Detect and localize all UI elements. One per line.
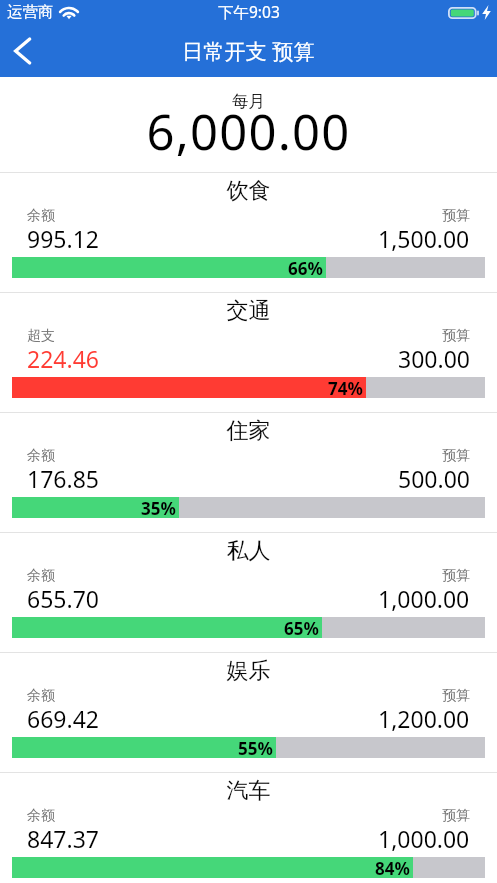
staticText: 66%: [288, 257, 323, 278]
staticText: 余额: [27, 567, 55, 585]
staticText: 预算: [442, 447, 470, 465]
staticText: 余额: [27, 207, 55, 225]
button[interactable]: 私人: [0, 532, 497, 652]
staticText: 500.00: [398, 463, 470, 494]
staticText: 224.46: [27, 343, 99, 374]
button[interactable]: Back: [0, 24, 46, 77]
staticText: 669.42: [27, 703, 99, 734]
staticText: 6,000.00: [0, 98, 497, 165]
staticText: 655.70: [27, 583, 99, 614]
button[interactable]: 交通: [0, 292, 497, 412]
staticText: 74%: [328, 377, 363, 398]
staticText: 1,000.00: [378, 823, 470, 854]
staticText: 住家: [0, 417, 497, 445]
staticText: 1,000.00: [378, 583, 470, 614]
staticText: 余额: [27, 687, 55, 705]
staticText: 995.12: [27, 223, 99, 254]
staticText: 运营商: [7, 2, 54, 22]
staticText: 饮食: [0, 177, 497, 205]
staticText: 预算: [442, 687, 470, 705]
button[interactable]: 住家: [0, 412, 497, 532]
staticText: 847.37: [27, 823, 99, 854]
staticText: 1,500.00: [378, 223, 470, 254]
staticText: 预算: [442, 207, 470, 225]
staticText: 余额: [27, 447, 55, 465]
staticText: 176.85: [27, 463, 99, 494]
staticText: 私人: [0, 537, 497, 565]
staticText: 超支: [27, 327, 55, 345]
staticText: 娱乐: [0, 657, 497, 685]
staticText: 日常开支 预算: [182, 36, 315, 65]
staticText: 预算: [442, 807, 470, 825]
staticText: 35%: [141, 497, 176, 518]
staticText: 余额: [27, 807, 55, 825]
staticText: 300.00: [398, 343, 470, 374]
button[interactable]: 汽车: [0, 772, 497, 883]
staticText: 84%: [375, 857, 410, 878]
staticText: 预算: [442, 567, 470, 585]
staticText: 交通: [0, 297, 497, 325]
button[interactable]: 饮食: [0, 172, 497, 292]
staticText: 55%: [238, 737, 273, 758]
button[interactable]: 娱乐: [0, 652, 497, 772]
staticText: 每月: [0, 91, 497, 112]
staticText: 汽车: [0, 777, 497, 805]
staticText: 预算: [442, 327, 470, 345]
staticText: 下午9:03: [218, 1, 280, 22]
staticText: 1,200.00: [378, 703, 470, 734]
staticText: 65%: [284, 617, 319, 638]
